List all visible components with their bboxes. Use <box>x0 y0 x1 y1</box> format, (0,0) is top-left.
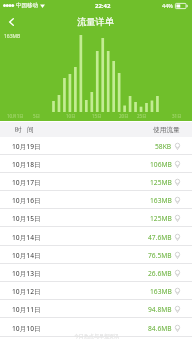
staticText: 15日 <box>92 113 102 119</box>
staticText: 125MB <box>150 214 172 223</box>
staticText: 中国移动 <box>16 2 38 9</box>
staticText: 10月11日 <box>12 305 41 314</box>
staticText: 163MB <box>150 287 172 296</box>
staticText: 58KB <box>155 142 172 151</box>
staticText: 47.6MB <box>148 233 172 242</box>
staticText: 76.5MB <box>148 251 172 260</box>
staticText: 10月1日 <box>7 113 24 119</box>
staticText: 10月12日 <box>12 287 41 296</box>
staticText: 25日 <box>137 113 147 119</box>
button[interactable]: 10月15日 <box>0 209 192 227</box>
staticText: 使用流量 <box>153 126 180 134</box>
staticText: 10月19日 <box>12 142 41 151</box>
staticText: 26.6MB <box>148 269 172 278</box>
staticText: 10月14日 <box>12 251 41 260</box>
button[interactable]: 10月18日 <box>0 155 192 173</box>
staticText: 10日 <box>66 113 76 119</box>
staticText: 84.6MB <box>148 324 172 333</box>
staticText: 44% <box>162 2 173 9</box>
button[interactable]: 10月14日 <box>0 246 192 264</box>
staticText: 163MB <box>4 33 21 40</box>
staticText: 10月18日 <box>12 160 41 169</box>
button[interactable]: 10月13日 <box>0 264 192 282</box>
staticText: 10月14日 <box>12 233 41 242</box>
staticText: 10月15日 <box>12 214 41 223</box>
staticText: 流量详单 <box>77 16 115 28</box>
staticText: 163MB <box>150 196 172 205</box>
staticText: 20日 <box>119 113 129 119</box>
staticText: 10月13日 <box>12 269 41 278</box>
button[interactable]: 10月11日 <box>0 300 192 318</box>
button[interactable]: Back <box>0 11 22 33</box>
button[interactable]: 10月12日 <box>0 282 192 300</box>
staticText: 5日 <box>33 113 41 119</box>
button[interactable]: 10月10日 <box>0 319 192 337</box>
staticText: 10月17日 <box>12 178 41 187</box>
button[interactable]: 10月17日 <box>0 173 192 191</box>
staticText: 今日热点与早报资讯 <box>74 333 119 339</box>
button[interactable]: 10月16日 <box>0 191 192 209</box>
staticText: 31日 <box>172 113 182 119</box>
staticText: 10月10日 <box>12 324 41 333</box>
staticText: 94.8MB <box>148 305 172 314</box>
button[interactable]: 10月14日 <box>0 228 192 246</box>
staticText: 22:42 <box>95 2 111 10</box>
staticText: 10月16日 <box>12 196 41 205</box>
staticText: 时 间 <box>15 125 34 134</box>
staticText: 106MB <box>150 160 172 169</box>
staticText: 125MB <box>150 178 172 187</box>
button[interactable]: 10月19日 <box>0 137 192 155</box>
